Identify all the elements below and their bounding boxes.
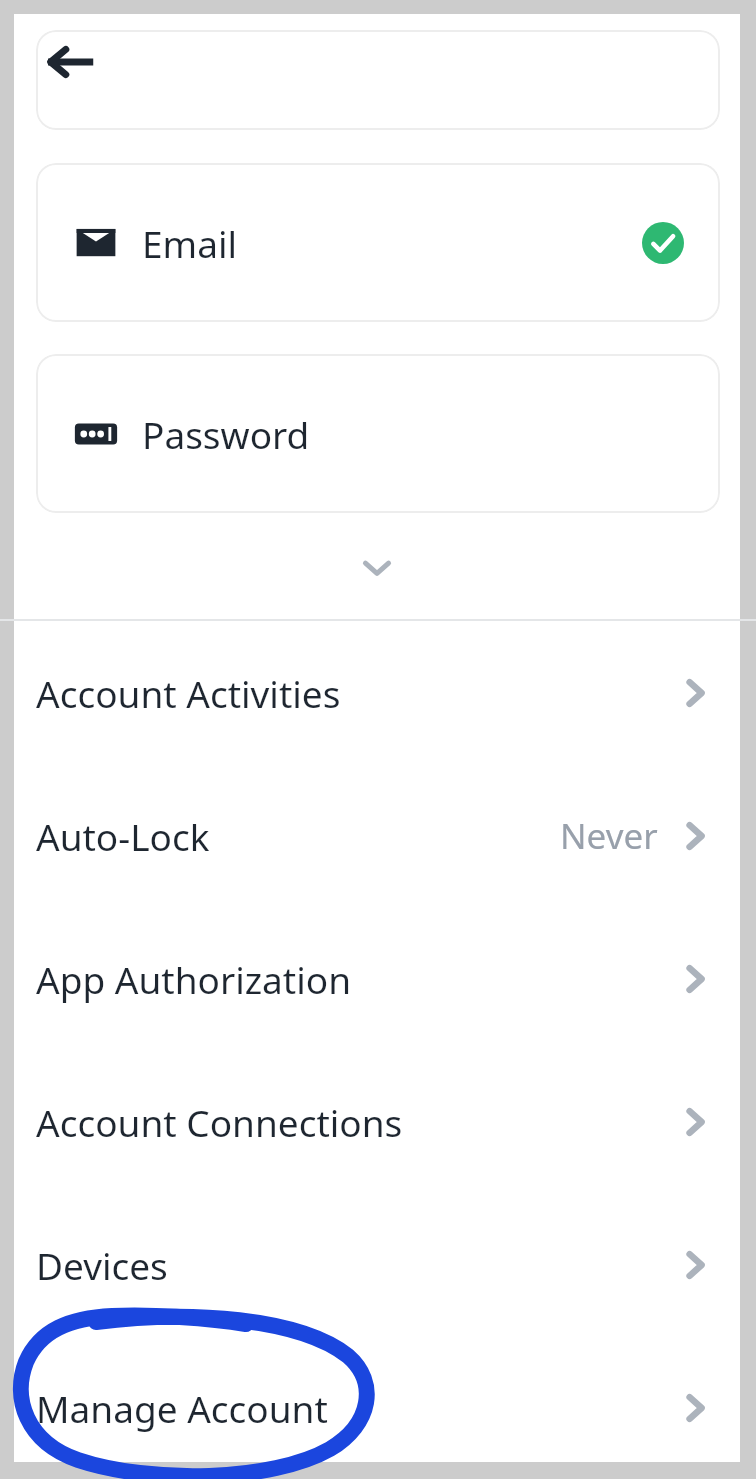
staticText: Email <box>142 218 238 268</box>
button[interactable]: Devices <box>14 1193 740 1336</box>
button[interactable]: Password <box>36 354 720 513</box>
button[interactable]: Email <box>36 163 720 322</box>
button[interactable]: Show more <box>347 538 407 598</box>
button[interactable]: Auto-Lock <box>14 764 740 907</box>
staticText: Manage Account <box>36 1383 328 1433</box>
staticText: Auto-Lock <box>36 811 210 861</box>
staticText: Devices <box>36 1240 168 1290</box>
staticText: Password <box>142 409 310 459</box>
staticText: App Authorization <box>36 954 352 1004</box>
button[interactable]: Account Activities <box>14 621 740 764</box>
button[interactable]: Account Connections <box>14 1050 740 1193</box>
button[interactable] <box>36 30 720 130</box>
staticText: Account Connections <box>36 1097 403 1147</box>
staticText: Account Activities <box>36 668 341 718</box>
staticText: Never <box>560 812 658 860</box>
button[interactable]: App Authorization <box>14 907 740 1050</box>
button[interactable]: Manage Account <box>14 1336 740 1479</box>
button[interactable]: Back <box>36 28 104 96</box>
